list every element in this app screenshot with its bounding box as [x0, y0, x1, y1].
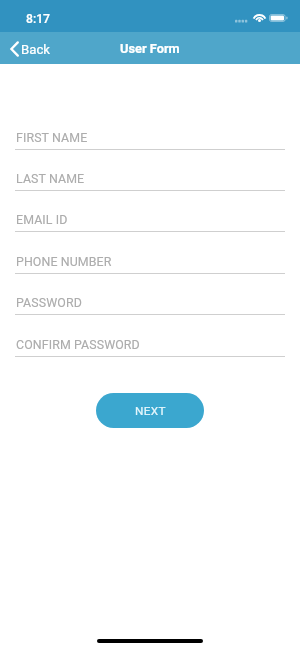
button[interactable]: Back: [0, 36, 58, 60]
button[interactable]: PHONE NUMBER: [15, 254, 285, 290]
staticText: FIRST NAME: [16, 130, 88, 145]
staticText: PASSWORD: [16, 295, 82, 310]
staticText: NEXT: [135, 404, 166, 418]
staticText: LAST NAME: [16, 171, 85, 186]
button[interactable]: PASSWORD: [15, 295, 285, 331]
staticText: User Form: [120, 41, 180, 56]
button[interactable]: CONFIRM PASSWORD: [15, 337, 285, 373]
button[interactable]: FIRST NAME: [15, 130, 285, 166]
other: Back: [10, 41, 19, 57]
button[interactable]: NEXT: [96, 393, 204, 428]
button[interactable]: LAST NAME: [15, 171, 285, 207]
staticText: CONFIRM PASSWORD: [16, 337, 140, 352]
staticText: PHONE NUMBER: [16, 254, 112, 269]
staticText: Back: [21, 42, 50, 57]
staticText: EMAIL ID: [16, 212, 68, 227]
button[interactable]: EMAIL ID: [15, 212, 285, 248]
staticText: 8:17: [26, 12, 51, 26]
